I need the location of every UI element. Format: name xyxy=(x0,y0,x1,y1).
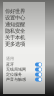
staticText: 通用 xyxy=(6,56,14,61)
staticText: 关于本机 xyxy=(5,34,25,41)
staticText: 你好世界 xyxy=(5,8,25,15)
staticText: 声音与触感 xyxy=(6,77,26,82)
staticText: 通知提醒 xyxy=(5,21,25,28)
staticText: 蓝牙 xyxy=(6,62,14,67)
staticText: 定位服务 xyxy=(6,72,22,77)
button[interactable]: 蓝牙 xyxy=(3,62,45,67)
button[interactable]: 声音与触感 xyxy=(3,77,45,82)
button[interactable]: 定位服务 xyxy=(3,72,45,77)
staticText: 更多选项 xyxy=(5,41,25,47)
staticText: 无线局域网 xyxy=(6,67,26,72)
staticText: 隐私安全 xyxy=(5,28,25,34)
button[interactable]: 无线局域网 xyxy=(3,67,45,72)
staticText: 设置中心 xyxy=(5,15,25,21)
